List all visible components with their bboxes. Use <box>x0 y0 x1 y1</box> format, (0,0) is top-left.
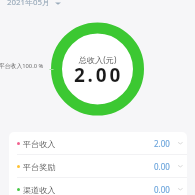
staticText: 平台收入 <box>23 139 56 149</box>
other: Expand <box>176 163 183 170</box>
button[interactable]: 平台收入 <box>9 132 187 155</box>
other: Expand <box>176 186 183 193</box>
staticText: 平台奖励 <box>23 162 56 172</box>
button[interactable]: 2021年05月 <box>7 0 61 8</box>
staticText: 2.00 <box>1 62 195 88</box>
staticText: 平台收入100.0 % <box>0 62 44 70</box>
staticText: 总收入(元) <box>0 54 195 65</box>
other: Expand <box>176 140 183 147</box>
button[interactable]: 渠道收入 <box>9 178 187 195</box>
staticText: 0.00 <box>154 161 170 172</box>
staticText: 2.00 <box>154 138 170 149</box>
button[interactable]: 平台奖励 <box>9 155 187 178</box>
staticText: 0.00 <box>154 184 170 195</box>
staticText: 渠道收入 <box>23 185 56 195</box>
staticText: 2021年05月 <box>7 0 50 8</box>
